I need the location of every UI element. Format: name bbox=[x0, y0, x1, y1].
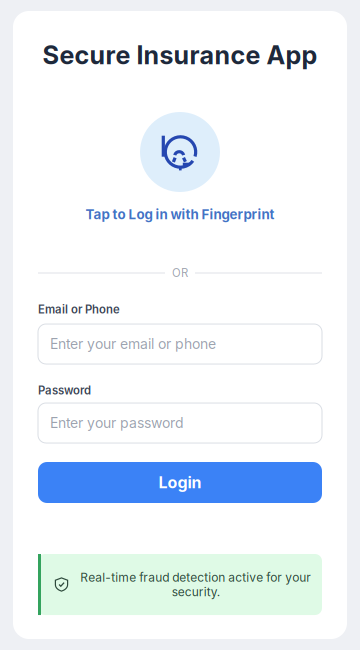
staticText: Real-time fraud detection active for you… bbox=[80, 570, 311, 599]
button[interactable]: Tap to Log in with Fingerprint bbox=[85, 112, 274, 222]
staticText: Password bbox=[38, 384, 91, 397]
staticText: OR bbox=[172, 266, 188, 280]
staticText: Email or Phone bbox=[38, 303, 120, 316]
button[interactable]: Enter your password bbox=[38, 403, 322, 443]
staticText: Enter your email or phone bbox=[50, 335, 216, 352]
staticText: Secure Insurance App bbox=[42, 40, 317, 70]
button[interactable]: Login bbox=[38, 462, 322, 503]
staticText: Tap to Log in with Fingerprint bbox=[85, 206, 274, 222]
staticText: Login bbox=[158, 473, 201, 492]
button[interactable]: Enter your email or phone bbox=[38, 324, 322, 364]
staticText: Enter your password bbox=[50, 414, 184, 431]
